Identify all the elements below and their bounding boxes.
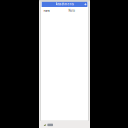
button[interactable]: App window <box>47 124 53 126</box>
staticText: Attachments <box>55 2 73 6</box>
button[interactable]: Start <box>43 124 46 126</box>
button[interactable]: Add attachment <box>84 2 87 6</box>
staticText: Name <box>43 9 50 12</box>
staticText: Note <box>69 9 76 12</box>
